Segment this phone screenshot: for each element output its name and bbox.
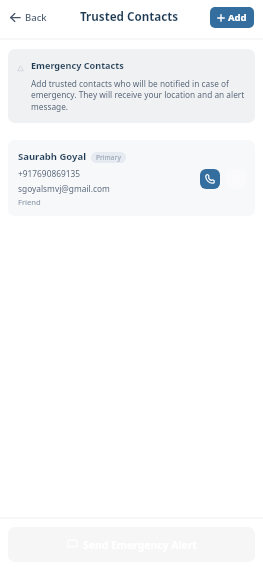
button[interactable]: Add (210, 7, 254, 28)
staticText: sgoyalsmvj@gmail.com (18, 183, 110, 194)
staticText: Send Emergency Alert (83, 538, 197, 552)
button[interactable]: Saurabh Goyal (8, 140, 255, 216)
button[interactable]: Call (200, 169, 220, 189)
staticText: Friend (18, 197, 41, 207)
button[interactable]: Back (7, 7, 50, 28)
staticText: Primary (96, 153, 121, 162)
staticText: Emergency Contacts (31, 59, 124, 71)
staticText: Back (25, 11, 47, 24)
staticText: +917690869135 (18, 168, 81, 179)
staticText: Trusted Contacts (80, 9, 178, 25)
staticText: Add (228, 11, 247, 24)
staticText: Add trusted contacts who will be notifie… (31, 78, 245, 113)
staticText: Saurabh Goyal (18, 150, 87, 163)
